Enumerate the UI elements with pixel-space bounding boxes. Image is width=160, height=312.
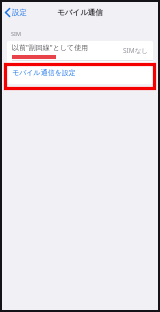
staticText: モバイル通信 bbox=[57, 8, 103, 17]
button[interactable]: 設定 bbox=[2, 2, 33, 22]
staticText: SIM bbox=[11, 30, 21, 37]
staticText: モバイル通信を設定 bbox=[12, 68, 76, 77]
staticText: 以前"副回線"として使用 bbox=[12, 43, 89, 53]
button[interactable]: モバイル通信を設定 bbox=[7, 61, 153, 84]
staticText: 設定 bbox=[12, 8, 27, 17]
other: Highlight bbox=[2, 41, 158, 89]
button[interactable]: 以前"副回線"として使用 bbox=[7, 41, 153, 60]
staticText: SIMなし bbox=[123, 46, 148, 55]
